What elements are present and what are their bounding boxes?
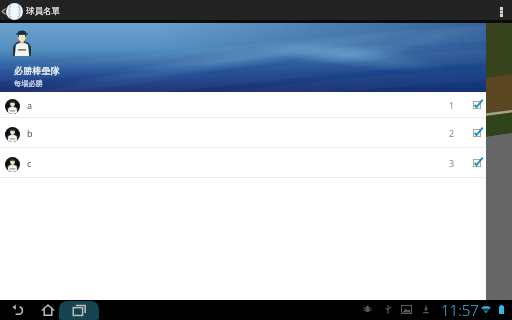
staticText: 球員名單 bbox=[26, 6, 60, 17]
staticText: b bbox=[27, 127, 33, 139]
button[interactable]: Navigate up bbox=[0, 0, 9, 23]
button[interactable]: Selected bbox=[473, 129, 481, 137]
staticText: 1 bbox=[449, 99, 455, 111]
staticText: c bbox=[27, 157, 32, 169]
staticText: a bbox=[27, 99, 33, 111]
button[interactable]: Selected bbox=[473, 101, 481, 109]
button[interactable]: Home bbox=[38, 300, 58, 320]
button[interactable]: a bbox=[0, 92, 486, 117]
staticText: 2 bbox=[449, 127, 455, 139]
staticText: 必勝棒壘隊 bbox=[14, 65, 60, 77]
button[interactable]: Selected bbox=[473, 159, 481, 167]
button[interactable]: Recent apps bbox=[69, 300, 89, 320]
staticText: 每場必勝 bbox=[14, 79, 43, 88]
button[interactable]: Back bbox=[8, 300, 28, 320]
staticText: 3 bbox=[449, 157, 455, 169]
staticText: 11:57 bbox=[441, 300, 479, 320]
button[interactable]: c bbox=[0, 148, 486, 177]
button[interactable]: b bbox=[0, 118, 486, 147]
button[interactable]: More options bbox=[490, 0, 512, 23]
